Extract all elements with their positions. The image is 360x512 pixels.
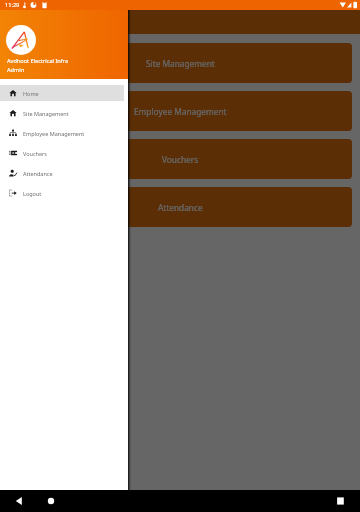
staticText: Attendance [23,170,53,177]
button[interactable]: Home [36,490,66,512]
button[interactable]: Employee Management [0,125,124,141]
button[interactable]: Employee Management [8,91,352,131]
button[interactable]: Logout [0,185,124,201]
staticText: Attendance [158,202,203,213]
staticText: Site Management [146,58,215,69]
button[interactable]: Site Management [8,43,352,83]
button[interactable]: Vouchers [0,145,124,161]
staticText: Vouchers [23,150,47,157]
staticText: Site Management [23,110,69,117]
staticText: 11:29 [5,1,20,9]
staticText: Home [23,90,39,97]
staticText: Vouchers [162,154,199,165]
staticText: Admin [7,66,25,74]
button[interactable]: Home [0,85,124,101]
staticText: Employee Management [134,106,227,117]
staticText: Employee Management [23,130,85,137]
staticText: Avdhoot Electrical Infra [7,57,69,65]
button[interactable]: Site Management [0,105,124,121]
button[interactable]: Recent apps [325,490,355,512]
button[interactable]: Vouchers [8,139,352,179]
staticText: Logout [23,190,42,197]
button[interactable]: Open navigation drawer [4,12,24,32]
button[interactable]: Back [4,490,34,512]
button[interactable]: Attendance [0,165,124,181]
button[interactable]: Attendance [8,187,352,227]
button[interactable]: Close navigation drawer [0,0,360,512]
